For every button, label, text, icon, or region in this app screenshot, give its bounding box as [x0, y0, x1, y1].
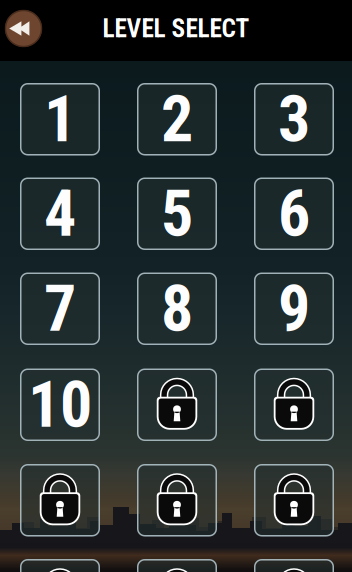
button[interactable]	[254, 368, 334, 441]
staticText: 9	[278, 271, 310, 346]
button[interactable]: 4	[20, 177, 100, 250]
staticText: 1	[44, 82, 76, 157]
button[interactable]	[254, 559, 334, 572]
button[interactable]: 10	[20, 368, 100, 441]
button[interactable]	[137, 464, 217, 536]
button[interactable]: 1	[20, 83, 100, 155]
staticText: 5	[161, 176, 193, 251]
staticText: 4	[44, 176, 76, 251]
button[interactable]: 5	[137, 177, 217, 250]
staticText: 8	[161, 271, 193, 346]
button[interactable]: 7	[20, 272, 100, 345]
button[interactable]: 3	[254, 83, 334, 155]
staticText: 3	[278, 82, 310, 157]
button[interactable]	[137, 559, 217, 572]
staticText: 7	[44, 271, 76, 346]
staticText: 6	[278, 176, 310, 251]
staticText: 2	[161, 82, 193, 157]
button[interactable]: 6	[254, 177, 334, 250]
button[interactable]: 2	[137, 83, 217, 155]
button[interactable]	[20, 559, 100, 572]
button[interactable]	[254, 464, 334, 536]
button[interactable]: 8	[137, 272, 217, 345]
button[interactable]	[20, 464, 100, 536]
button[interactable]: Back	[5, 10, 42, 47]
button[interactable]: 9	[254, 272, 334, 345]
staticText: 10	[28, 367, 92, 442]
button[interactable]	[137, 368, 217, 441]
staticText: LEVEL SELECT	[102, 14, 249, 43]
